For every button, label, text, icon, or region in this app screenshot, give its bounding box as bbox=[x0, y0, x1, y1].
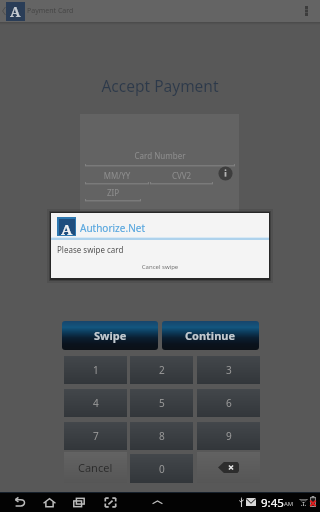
button[interactable]: Delete bbox=[197, 452, 260, 483]
staticText: AM bbox=[284, 500, 294, 508]
button[interactable]: Recent apps bbox=[69, 492, 89, 512]
staticText: Cancel bbox=[78, 460, 113, 475]
button[interactable]: 0 bbox=[130, 454, 193, 483]
staticText: A bbox=[61, 219, 73, 235]
staticText: 8 bbox=[159, 429, 165, 443]
button[interactable]: 8 bbox=[130, 422, 193, 450]
button[interactable]: 6 bbox=[197, 389, 260, 417]
button[interactable]: 5 bbox=[130, 389, 193, 417]
staticText: 2 bbox=[159, 363, 165, 377]
staticText: 9:45 bbox=[261, 495, 284, 511]
button[interactable]: Home bbox=[39, 492, 59, 512]
staticText: Continue bbox=[185, 328, 236, 343]
staticText: Please swipe card bbox=[57, 244, 124, 255]
staticText: 4 bbox=[93, 396, 99, 410]
button[interactable]: Cancel bbox=[64, 452, 127, 483]
button[interactable]: Info about CVV2 bbox=[218, 166, 233, 181]
staticText: 0 bbox=[159, 462, 165, 476]
button[interactable]: Show notifications bbox=[147, 492, 167, 512]
staticText: 5 bbox=[159, 396, 165, 410]
staticText: 1 bbox=[93, 363, 99, 377]
staticText: Swipe bbox=[94, 328, 127, 343]
button[interactable]: 3 bbox=[197, 356, 260, 384]
staticText: 3 bbox=[226, 363, 232, 377]
button[interactable]: 4 bbox=[64, 389, 127, 417]
staticText: Authorize.Net bbox=[80, 221, 145, 235]
button[interactable]: Cancel swipe bbox=[51, 263, 269, 271]
staticText: A bbox=[10, 2, 21, 21]
staticText: 7 bbox=[93, 429, 99, 443]
staticText: 6 bbox=[226, 396, 232, 410]
staticText: Accept Payment bbox=[0, 75, 320, 96]
button[interactable]: MM/YY bbox=[85, 170, 149, 181]
button[interactable]: 2 bbox=[130, 356, 193, 384]
button[interactable]: CVV2 bbox=[150, 170, 213, 181]
staticText: 9 bbox=[226, 429, 232, 443]
button[interactable]: Continue bbox=[162, 321, 259, 350]
button[interactable]: Back bbox=[9, 492, 29, 512]
button[interactable]: Swipe bbox=[62, 321, 158, 350]
button[interactable]: Screenshot bbox=[100, 492, 120, 512]
button[interactable]: 1 bbox=[64, 356, 127, 384]
staticText: Payment Card bbox=[27, 6, 74, 16]
button[interactable]: More options bbox=[296, 0, 316, 22]
button[interactable]: ZIP bbox=[85, 187, 141, 198]
button[interactable]: Card Number bbox=[85, 150, 235, 161]
button[interactable]: 9 bbox=[197, 422, 260, 450]
button[interactable]: 7 bbox=[64, 422, 127, 450]
